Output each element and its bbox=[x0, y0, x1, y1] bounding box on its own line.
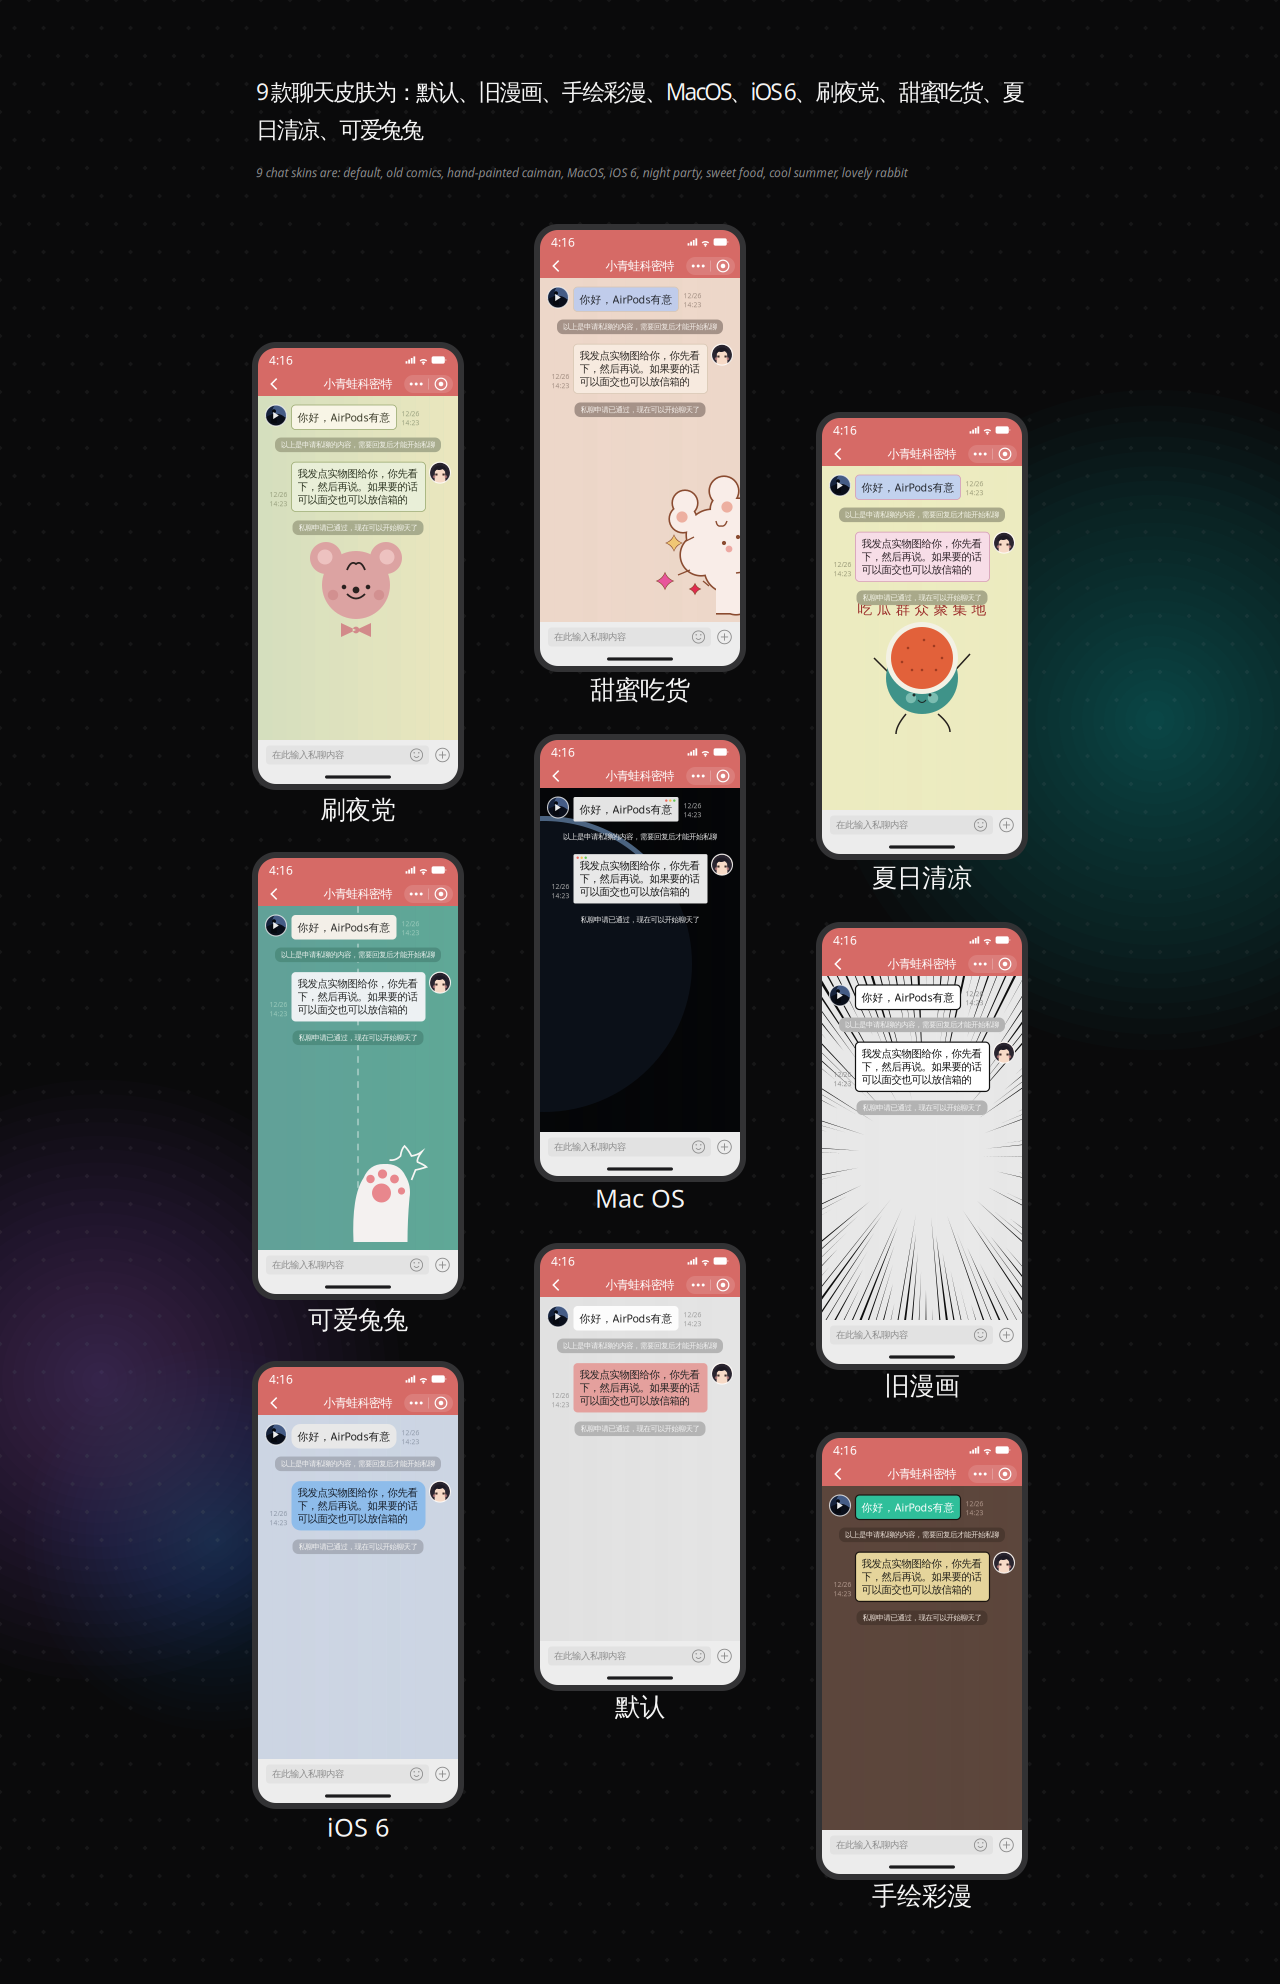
button[interactable]: Back bbox=[827, 443, 849, 465]
staticText: 4:16 bbox=[551, 234, 575, 250]
staticText: 旧漫画 bbox=[884, 1370, 959, 1402]
button[interactable]: Add attachment bbox=[999, 817, 1014, 832]
staticText: 日清凉、可爱兔兔 bbox=[256, 116, 425, 144]
button[interactable]: 在此输入私聊内容 bbox=[548, 1646, 711, 1665]
button[interactable]: 在此输入私聊内容 bbox=[548, 627, 711, 646]
button[interactable]: More options bbox=[968, 955, 1017, 973]
button[interactable]: Back bbox=[263, 1392, 285, 1414]
staticText: 9 款聊天皮肤为：默认、旧漫画、手绘彩漫、MacOS、iOS 6、刷夜党、甜蜜吃… bbox=[256, 76, 1026, 107]
staticText: 以上是申请私聊的内容，需要回复后才能开始私聊 bbox=[563, 832, 717, 841]
staticText: 12/26 bbox=[401, 1428, 419, 1437]
staticText: 夏日清凉 bbox=[872, 862, 972, 894]
staticText: 我发点实物图给你，你先看下，然后再说。如果要的话可以面交也可以放信箱的 bbox=[297, 977, 417, 1016]
button[interactable]: More options bbox=[404, 375, 453, 393]
staticText: 以上是申请私聊的内容，需要回复后才能开始私聊 bbox=[563, 322, 717, 331]
staticText: 你好，AirPods有意 bbox=[861, 990, 954, 1004]
button[interactable]: 在此输入私聊内容 bbox=[830, 1835, 993, 1854]
staticText: 我发点实物图给你，你先看下，然后再说。如果要的话可以面交也可以放信箱的 bbox=[579, 349, 699, 388]
staticText: 在此输入私聊内容 bbox=[272, 749, 344, 761]
staticText: 14:23 bbox=[833, 569, 851, 578]
staticText: 在此输入私聊内容 bbox=[272, 1259, 344, 1271]
staticText: 12/26 bbox=[833, 1580, 851, 1589]
staticText: 私聊申请已通过，现在可以开始聊天了 bbox=[298, 523, 417, 532]
staticText: 在此输入私聊内容 bbox=[836, 1329, 908, 1341]
button[interactable]: Back bbox=[545, 1274, 567, 1296]
staticText: 12/26 bbox=[551, 1391, 569, 1400]
staticText: 我发点实物图给你，你先看下，然后再说。如果要的话可以面交也可以放信箱的 bbox=[297, 467, 417, 506]
staticText: 14:23 bbox=[683, 300, 701, 309]
button[interactable]: More options bbox=[968, 1465, 1017, 1483]
staticText: 小青蛙科密特 bbox=[605, 1277, 674, 1292]
button[interactable]: Add attachment bbox=[717, 1648, 732, 1663]
staticText: 默认 bbox=[615, 1691, 665, 1723]
staticText: 我发点实物图给你，你先看下，然后再说。如果要的话可以面交也可以放信箱的 bbox=[579, 859, 699, 898]
staticText: 私聊申请已通过，现在可以开始聊天了 bbox=[580, 405, 699, 414]
staticText: 14:23 bbox=[551, 381, 569, 390]
button[interactable]: Add attachment bbox=[717, 1139, 732, 1154]
button[interactable]: Add attachment bbox=[999, 1327, 1014, 1342]
staticText: 14:23 bbox=[965, 488, 983, 497]
button[interactable]: More options bbox=[686, 257, 735, 275]
button[interactable]: 在此输入私聊内容 bbox=[548, 1137, 711, 1156]
staticText: 以上是申请私聊的内容，需要回复后才能开始私聊 bbox=[845, 1020, 999, 1029]
staticText: 你好，AirPods有意 bbox=[579, 802, 672, 816]
staticText: 14:23 bbox=[833, 1079, 851, 1088]
staticText: 可爱兔兔 bbox=[308, 1304, 408, 1336]
staticText: 小青蛙科密特 bbox=[605, 768, 674, 783]
button[interactable]: Add attachment bbox=[435, 747, 450, 762]
button[interactable]: Add attachment bbox=[717, 629, 732, 644]
staticText: 12/26 bbox=[269, 1509, 287, 1518]
button[interactable]: Back bbox=[545, 255, 567, 277]
button[interactable]: Add attachment bbox=[999, 1837, 1014, 1852]
staticText: 14:23 bbox=[401, 418, 419, 427]
staticText: 我发点实物图给你，你先看下，然后再说。如果要的话可以面交也可以放信箱的 bbox=[861, 1047, 981, 1086]
staticText: 12/26 bbox=[401, 409, 419, 418]
staticText: 在此输入私聊内容 bbox=[836, 1839, 908, 1851]
staticText: 手绘彩漫 bbox=[872, 1880, 972, 1912]
staticText: 14:23 bbox=[269, 1518, 287, 1527]
button[interactable]: More options bbox=[404, 1394, 453, 1412]
button[interactable]: 在此输入私聊内容 bbox=[266, 745, 429, 764]
staticText: 以上是申请私聊的内容，需要回复后才能开始私聊 bbox=[281, 950, 435, 959]
button[interactable]: Back bbox=[545, 765, 567, 787]
button[interactable]: Back bbox=[263, 883, 285, 905]
staticText: 私聊申请已通过，现在可以开始聊天了 bbox=[580, 915, 699, 924]
staticText: 4:16 bbox=[833, 932, 857, 948]
button[interactable]: Back bbox=[827, 1463, 849, 1485]
staticText: 4:16 bbox=[269, 352, 293, 368]
staticText: 小青蛙科密特 bbox=[323, 1395, 392, 1410]
staticText: 你好，AirPods有意 bbox=[297, 1429, 390, 1443]
staticText: 私聊申请已通过，现在可以开始聊天了 bbox=[298, 1542, 417, 1551]
staticText: 小青蛙科密特 bbox=[323, 376, 392, 391]
staticText: 你好，AirPods有意 bbox=[579, 1311, 672, 1325]
staticText: 你好，AirPods有意 bbox=[861, 1500, 954, 1514]
staticText: 你好，AirPods有意 bbox=[297, 920, 390, 934]
staticText: 14:23 bbox=[683, 1319, 701, 1328]
staticText: 12/26 bbox=[965, 989, 983, 998]
staticText: 以上是申请私聊的内容，需要回复后才能开始私聊 bbox=[845, 1530, 999, 1539]
staticText: 以上是申请私聊的内容，需要回复后才能开始私聊 bbox=[845, 510, 999, 519]
button[interactable]: Back bbox=[827, 953, 849, 975]
staticText: 我发点实物图给你，你先看下，然后再说。如果要的话可以面交也可以放信箱的 bbox=[861, 537, 981, 576]
staticText: 12/26 bbox=[683, 801, 701, 810]
staticText: 在此输入私聊内容 bbox=[272, 1768, 344, 1780]
button[interactable]: 在此输入私聊内容 bbox=[830, 815, 993, 834]
staticText: 12/26 bbox=[833, 1070, 851, 1079]
staticText: 4:16 bbox=[833, 1442, 857, 1458]
staticText: 私聊申请已通过，现在可以开始聊天了 bbox=[298, 1033, 417, 1042]
button[interactable]: More options bbox=[686, 1276, 735, 1294]
button[interactable]: More options bbox=[968, 445, 1017, 463]
button[interactable]: 在此输入私聊内容 bbox=[266, 1764, 429, 1783]
staticText: 14:23 bbox=[833, 1589, 851, 1598]
staticText: 你好，AirPods有意 bbox=[297, 410, 390, 424]
staticText: 甜蜜吃货 bbox=[590, 674, 690, 706]
staticText: 小青蛙科密特 bbox=[887, 956, 956, 971]
button[interactable]: More options bbox=[686, 767, 735, 785]
button[interactable]: 在此输入私聊内容 bbox=[830, 1325, 993, 1344]
button[interactable]: Add attachment bbox=[435, 1766, 450, 1781]
button[interactable]: More options bbox=[404, 885, 453, 903]
staticText: 刷夜党 bbox=[320, 794, 395, 826]
button[interactable]: 在此输入私聊内容 bbox=[266, 1255, 429, 1274]
button[interactable]: Add attachment bbox=[435, 1257, 450, 1272]
button[interactable]: Back bbox=[263, 373, 285, 395]
